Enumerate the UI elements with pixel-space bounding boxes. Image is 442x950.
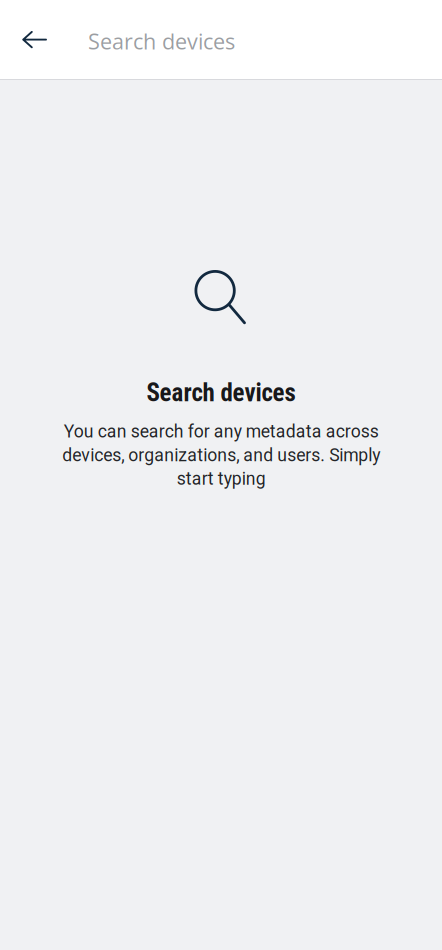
staticText: Search devices <box>146 378 295 407</box>
staticText: Search devices <box>88 26 235 56</box>
staticText: You can search for any metadata across d… <box>62 421 380 489</box>
button[interactable]: Back <box>0 0 68 79</box>
button[interactable]: Search devices <box>68 0 442 79</box>
